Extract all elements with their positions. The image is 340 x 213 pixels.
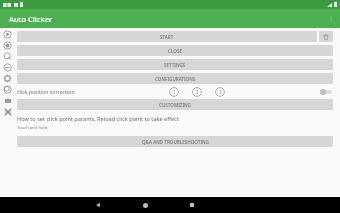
button[interactable]: More options <box>322 10 340 28</box>
staticText: CONFIGURATIONS <box>155 76 196 82</box>
button[interactable]: click position correction <box>17 85 333 98</box>
button[interactable]: Keyboard <box>3 96 12 105</box>
staticText: click position correction <box>17 88 75 95</box>
button[interactable]: 1 <box>169 87 179 97</box>
staticText: CLOSE <box>168 48 182 54</box>
staticText: Auto Clicker <box>9 14 53 24</box>
button[interactable]: Delete <box>319 31 333 42</box>
button[interactable]: Back <box>92 199 104 211</box>
staticText: 3 <box>219 89 222 95</box>
button[interactable]: 3 <box>215 87 225 97</box>
staticText: START <box>160 34 174 40</box>
button[interactable]: Tap gesture <box>3 52 12 61</box>
button[interactable]: SETTINGS <box>17 59 333 70</box>
button[interactable]: Stop target <box>3 41 12 50</box>
button[interactable]: Remove <box>3 63 12 72</box>
staticText: CUSTOMIZING <box>159 102 191 108</box>
button[interactable]: CUSTOMIZING <box>17 99 333 110</box>
button[interactable]: Settings gear <box>3 74 12 83</box>
button[interactable]: Toggle click position correction <box>319 87 333 97</box>
button[interactable]: Recent apps <box>186 199 198 211</box>
staticText: SETTINGS <box>164 62 186 68</box>
staticText: 2 <box>196 89 199 95</box>
staticText: 1 <box>173 89 176 95</box>
button[interactable]: Record <box>3 85 12 94</box>
button[interactable]: CLOSE <box>17 45 333 56</box>
staticText: Touch and hold <box>17 125 48 131</box>
staticText: Q&A AND TROUBLESHOOTING <box>142 139 209 145</box>
button[interactable]: How to set click point params, Reload cl… <box>17 114 333 132</box>
button[interactable]: Close <box>3 107 12 116</box>
button[interactable]: Home <box>139 199 151 211</box>
staticText: How to set click point params, Reload cl… <box>17 115 179 123</box>
button[interactable]: Target <box>3 30 12 39</box>
button[interactable]: Q&A AND TROUBLESHOOTING <box>17 136 333 147</box>
button[interactable]: CONFIGURATIONS <box>17 73 333 84</box>
button[interactable]: 2 <box>192 87 202 97</box>
button[interactable]: START <box>17 31 317 42</box>
